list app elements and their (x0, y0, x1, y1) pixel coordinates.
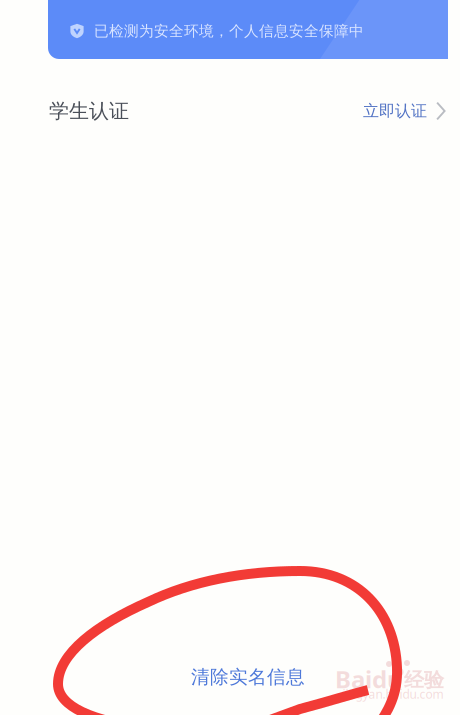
staticText: 经验 (404, 668, 444, 692)
staticText: 立即认证 (363, 101, 427, 121)
staticText: 学生认证 (49, 99, 129, 123)
staticText: 清除实名信息 (191, 665, 305, 688)
button[interactable]: 学生认证 (0, 88, 460, 134)
staticText: jingyan.baidu.com (342, 686, 443, 702)
staticText: 已检测为安全环境，个人信息安全保障中 (94, 22, 364, 40)
staticText: Baidu (335, 663, 403, 695)
button[interactable]: 清除实名信息 (18, 654, 460, 700)
